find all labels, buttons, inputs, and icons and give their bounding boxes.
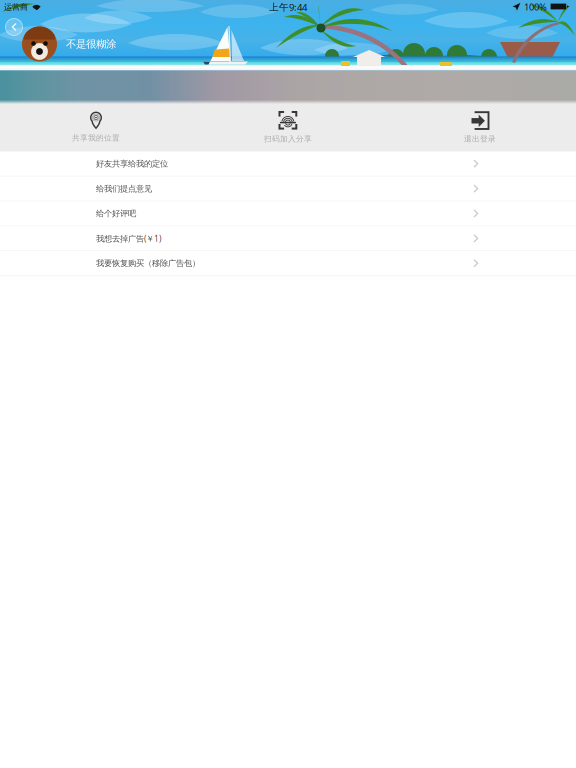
button[interactable]: 我要恢复购买（移除广告包）	[0, 251, 576, 275]
button[interactable]: 共享我的位置	[0, 104, 192, 152]
staticText: 共享我的位置	[72, 133, 120, 143]
staticText: 不是很糊涂	[66, 37, 116, 50]
staticText: 运营商	[4, 2, 28, 12]
staticText: 我想去掉广告(￥1)	[96, 233, 161, 244]
staticText: 退出登录	[464, 134, 496, 144]
button[interactable]: 好友共享给我的定位	[0, 152, 576, 176]
staticText: 上午9:44	[269, 0, 307, 14]
button[interactable]: 我想去掉广告(￥1)	[0, 226, 576, 250]
staticText: 扫码加入分享	[264, 134, 312, 144]
staticText: 给个好评吧	[96, 208, 136, 219]
staticText: 给我们提点意见	[96, 183, 152, 194]
staticText: 好友共享给我的定位	[96, 158, 168, 169]
button[interactable]: 给个好评吧	[0, 201, 576, 226]
button[interactable]: 给我们提点意见	[0, 177, 576, 201]
button[interactable]: 退出登录	[384, 104, 576, 152]
button[interactable]: 扫码加入分享	[192, 104, 384, 152]
staticText: 我要恢复购买（移除广告包）	[96, 258, 200, 268]
button[interactable]: Back	[1, 14, 27, 40]
staticText: 100%	[524, 1, 547, 13]
